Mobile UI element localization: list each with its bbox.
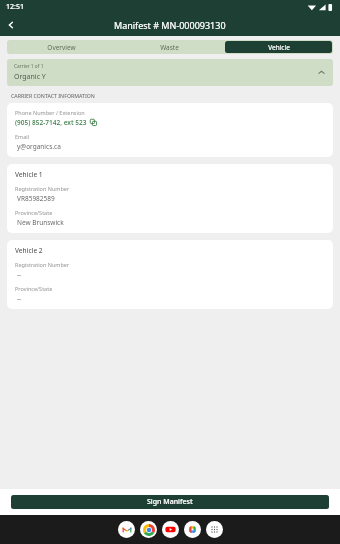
staticText: Vehicle 2 [15, 246, 43, 255]
staticText: Organic Y [14, 72, 46, 82]
button[interactable]: Sign Manifest [11, 495, 329, 509]
staticText: CARRIER CONTACT INFORMATION [11, 92, 95, 99]
button[interactable]: Overview [8, 41, 114, 53]
staticText: -- [17, 294, 22, 303]
button[interactable]: Copy phone number [90, 119, 97, 126]
staticText: Overview [47, 43, 76, 52]
staticText: 12:51 [6, 2, 24, 12]
staticText: Province/State [15, 285, 53, 292]
staticText: Email [15, 133, 30, 140]
staticText: VR85982589 [17, 194, 55, 203]
button[interactable]: Carrier 1 of 1 [7, 59, 333, 86]
button[interactable]: Back [0, 14, 22, 36]
staticText: New Brunswick [17, 218, 64, 227]
staticText: Registration Number [15, 185, 70, 192]
button[interactable]: Chrome [140, 521, 157, 538]
staticText: Waste [160, 43, 179, 52]
button[interactable]: Google Photos [184, 521, 201, 538]
staticText: -- [17, 270, 22, 279]
staticText: Registration Number [15, 261, 70, 268]
staticText: Vehicle 1 [15, 170, 43, 179]
staticText: Manifest # MN-000093130 [114, 19, 226, 31]
staticText: Carrier 1 of 1 [14, 63, 44, 70]
other: Collapse [317, 68, 326, 77]
staticText: Sign Manifest [147, 497, 193, 507]
button[interactable]: YouTube [162, 521, 179, 538]
button[interactable]: Vehicle [225, 41, 332, 53]
staticText: y@organics.ca [17, 142, 61, 151]
button[interactable]: Gmail [118, 521, 135, 538]
button[interactable]: Waste [116, 41, 223, 53]
button[interactable]: All apps [206, 521, 223, 538]
staticText: Vehicle [268, 43, 290, 52]
staticText: (905) 852-7142, ext 523 [15, 118, 87, 127]
staticText: Province/State [15, 209, 53, 216]
staticText: Phone Number / Extension [15, 109, 85, 116]
